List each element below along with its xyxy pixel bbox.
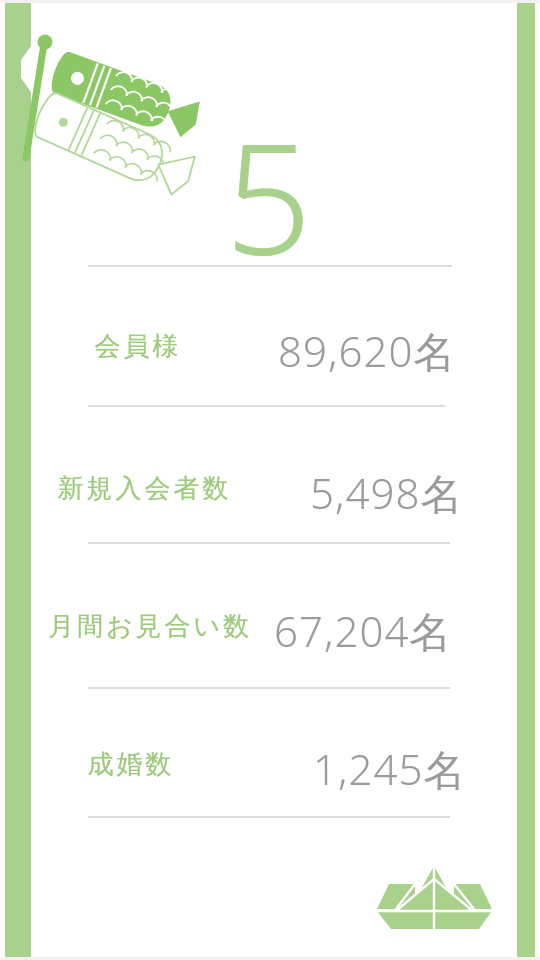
staticText: 成婚数 — [86, 748, 173, 781]
staticText: 67,204名 — [274, 602, 453, 659]
staticText: 5 — [225, 92, 312, 299]
other: Decoration — [0, 0, 540, 960]
staticText: 新規入会者数 — [56, 472, 230, 505]
button[interactable]: 新規入会者数 — [0, 430, 540, 530]
button[interactable]: 成婚数 — [0, 706, 540, 806]
staticText: 月間お見合い数 — [48, 610, 253, 643]
staticText: 5,498名 — [310, 464, 464, 521]
staticText: 会員様 — [93, 330, 180, 363]
button[interactable]: 会員様 — [0, 290, 540, 390]
button[interactable]: 月間お見合い数 — [0, 568, 540, 668]
staticText: 89,620名 — [278, 322, 457, 379]
staticText: 1,245名 — [313, 740, 467, 797]
